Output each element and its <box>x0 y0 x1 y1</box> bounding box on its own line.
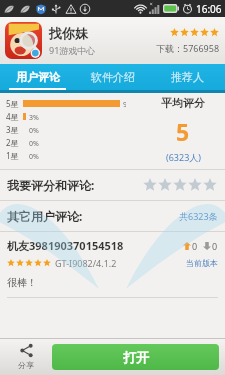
staticText: 平均评分 <box>161 96 205 110</box>
button[interactable]: Share <box>6 343 46 370</box>
staticText: 91游戏中心 <box>49 44 96 56</box>
staticText: 4星 <box>6 111 19 122</box>
button[interactable]: 打开 <box>52 344 219 370</box>
staticText: 机友398190370154518 <box>7 238 124 253</box>
button[interactable]: 用户评论 <box>0 64 75 90</box>
button[interactable]: 机友398190370154518 <box>0 232 225 298</box>
staticText: 很棒！ <box>7 276 37 289</box>
staticText: 打开 <box>123 349 149 365</box>
button[interactable]: 推荐人 <box>150 64 225 90</box>
staticText: 软件介绍 <box>91 70 135 84</box>
staticText: 0 <box>212 240 218 252</box>
staticText: 我要评分和评论: <box>7 177 95 193</box>
staticText: 0 <box>192 240 198 252</box>
staticText: 下载：5766958 <box>156 42 220 54</box>
staticText: 1星 <box>6 150 19 161</box>
staticText: 16:06 <box>196 2 222 16</box>
staticText: 0% <box>29 139 39 146</box>
staticText: 0% <box>29 126 39 133</box>
staticText: 3星 <box>6 124 19 135</box>
button[interactable]: 软件介绍 <box>75 64 150 90</box>
staticText: 当前版本 <box>186 258 218 268</box>
staticText: 找你妹 <box>49 25 88 41</box>
staticText: (6323人) <box>166 151 201 163</box>
button[interactable]: 其它用户评论: <box>0 201 225 231</box>
other: Rate this app <box>143 178 218 192</box>
staticText: 5星 <box>6 98 19 109</box>
staticText: 5 <box>176 116 190 147</box>
staticText: 分享 <box>18 360 34 370</box>
staticText: 其它用户评论: <box>7 208 83 224</box>
staticText: 推荐人 <box>171 70 204 84</box>
button[interactable]: 找你妹 <box>0 17 225 64</box>
staticText: 用户评论 <box>16 70 60 84</box>
button[interactable]: 我要评分和评论: <box>0 170 225 200</box>
staticText: 0% <box>29 152 39 159</box>
staticText: 共6323条 <box>179 210 218 222</box>
staticText: 2星 <box>6 137 19 148</box>
staticText: GT-I9082/4.1.2 <box>55 257 117 269</box>
staticText: 3% <box>29 113 39 120</box>
staticText: 94% <box>123 100 126 107</box>
